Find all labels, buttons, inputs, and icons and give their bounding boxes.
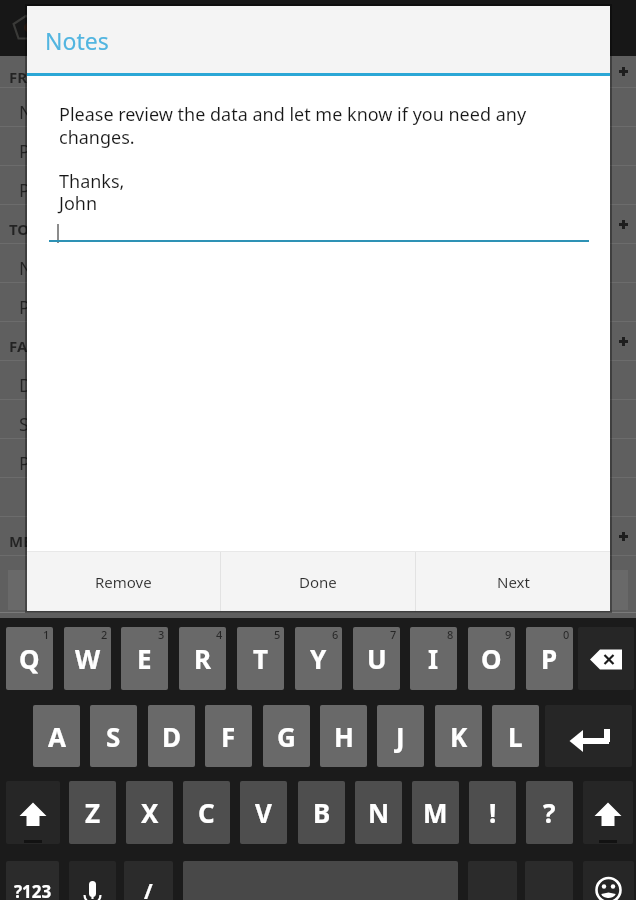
staticText: R [194,641,212,676]
other: Add [619,337,628,346]
staticText: Next [497,572,530,592]
button[interactable]: Q [6,627,53,690]
staticText: 3 [158,627,165,642]
button[interactable]: Name [0,244,636,282]
button[interactable]: C [183,781,230,844]
button[interactable]: Name [0,88,636,126]
button[interactable]: Next [416,552,610,611]
button[interactable]: O [468,627,515,690]
button[interactable]: Phone [0,127,636,165]
staticText: N [368,795,390,830]
other: App icon [11,13,40,42]
button[interactable]: M [412,781,459,844]
button[interactable]: T [237,627,284,690]
staticText: P [541,641,558,676]
staticText: W [75,641,101,676]
button[interactable]: R [179,627,226,690]
staticText: Priority [19,451,81,476]
button[interactable]: Backspace [578,627,634,690]
staticText: 4 [216,627,223,642]
button[interactable]: Shift [6,781,60,844]
staticText: Name [19,100,70,125]
button[interactable]: P [526,627,573,690]
button[interactable]: FROM [0,56,636,87]
button[interactable]: Remove [27,552,220,611]
staticText: B [313,795,331,830]
button[interactable]: Emoji [583,861,634,900]
button[interactable]: Phone [0,283,636,321]
staticText: S [106,719,121,754]
staticText: J [396,719,405,754]
staticText: TO [9,219,30,239]
button[interactable]: A [33,705,80,767]
staticText: MESSAGE [9,531,78,551]
button[interactable]: X [126,781,173,844]
staticText: FROM [9,67,54,87]
button[interactable]: Done [221,552,415,611]
staticText: Phone [19,295,74,320]
button[interactable]: B [298,781,345,844]
button[interactable]: Priority [0,439,636,477]
staticText: M [423,795,448,830]
staticText: 7 [390,627,397,642]
button[interactable]: Voice input [69,861,116,900]
other: Add [619,532,628,541]
staticText: F [221,719,236,754]
button[interactable]: ?123 [6,861,59,900]
staticText: Z [85,795,101,830]
staticText: 6 [332,627,339,642]
staticText: Q [19,641,40,676]
staticText: C [198,795,215,830]
button[interactable] [0,478,636,516]
button[interactable]: Shift [0,400,636,438]
staticText: FACILITY [9,336,75,356]
staticText: I [428,641,439,676]
staticText: ? [543,795,556,830]
staticText: O [481,641,502,676]
button[interactable]: Position [0,166,636,204]
button[interactable]: Shift [583,781,633,844]
button[interactable]: K [435,705,482,767]
button[interactable]: F [205,705,252,767]
other: Add [619,220,628,229]
staticText: Department [19,373,122,398]
button[interactable]: H [320,705,367,767]
button[interactable]: ! [469,781,516,844]
button[interactable]: Z [69,781,116,844]
staticText: ?123 [14,880,52,900]
button[interactable]: I [410,627,457,690]
button[interactable]: W [64,627,111,690]
staticText: 2 [101,627,108,642]
staticText: Remove [95,572,152,592]
staticText: L [508,719,523,754]
staticText: Name [19,256,70,281]
staticText: Notes [45,25,109,56]
other: Add [619,67,628,76]
button[interactable]: S [90,705,137,767]
button[interactable]: V [240,781,287,844]
button[interactable]: TO [0,205,636,243]
button[interactable]: J [377,705,424,767]
button[interactable]: G [263,705,310,767]
button[interactable]: U [353,627,400,690]
button[interactable]: MESSAGE [0,517,636,555]
button[interactable]: Y [295,627,342,690]
staticText: X [141,795,159,830]
button[interactable]: L [492,705,539,767]
button[interactable]: N [355,781,402,844]
button[interactable]: E [121,627,168,690]
staticText: V [255,795,272,830]
button[interactable]: Enter [545,705,632,767]
button[interactable]: / [124,861,173,900]
staticText: Shift [19,412,58,437]
button[interactable]: D [148,705,195,767]
staticText: D [162,719,182,754]
button[interactable]: Department [0,361,636,399]
staticText: 5 [274,627,281,642]
staticText: A [48,719,66,754]
button[interactable]: ? [526,781,573,844]
button[interactable]: FACILITY [0,322,636,360]
